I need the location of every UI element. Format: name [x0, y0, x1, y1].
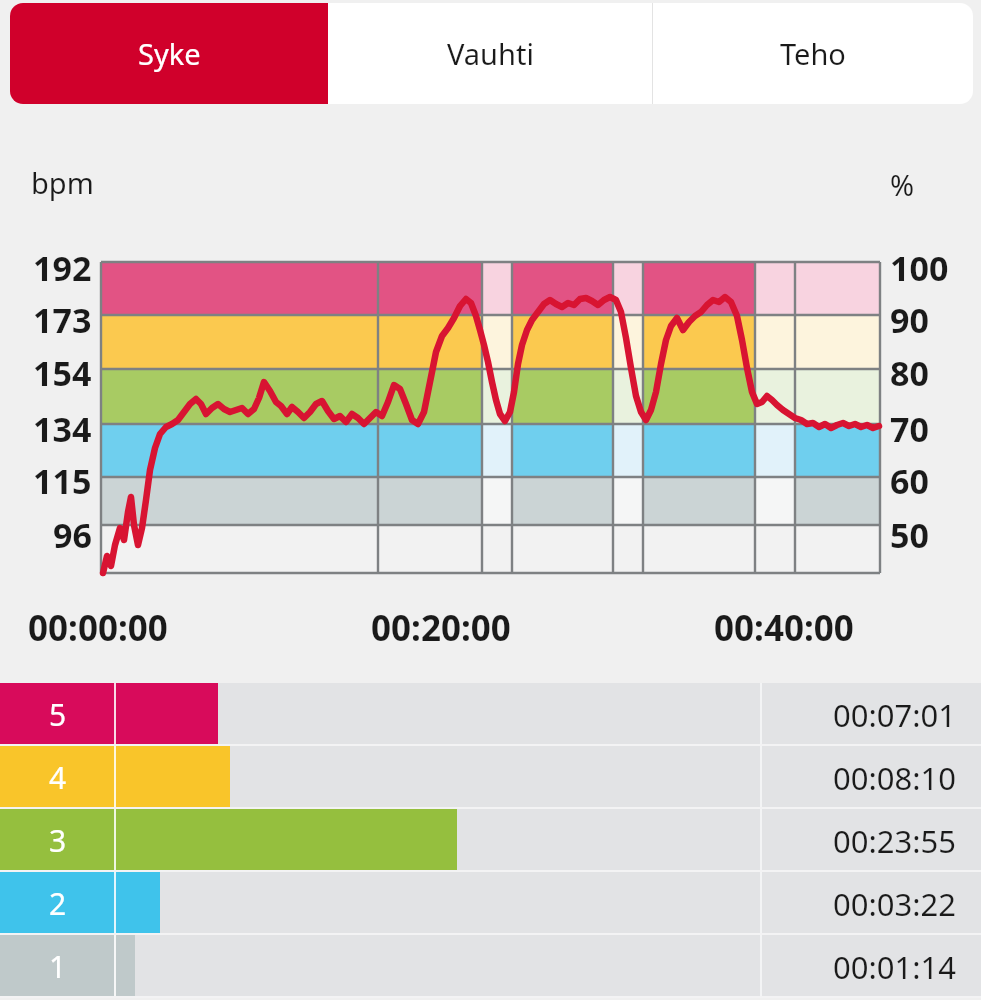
- staticText: 3: [49, 820, 67, 861]
- staticText: bpm: [31, 163, 94, 202]
- staticText: 192: [33, 245, 92, 291]
- staticText: 134: [33, 406, 92, 452]
- staticText: 5: [49, 694, 67, 735]
- button[interactable]: 3: [0, 809, 981, 872]
- staticText: 173: [33, 297, 92, 343]
- staticText: 2: [49, 883, 67, 924]
- staticText: 96: [53, 512, 92, 558]
- staticText: 4: [49, 757, 67, 798]
- staticText: Vauhti: [447, 34, 534, 73]
- staticText: 00:01:14: [833, 946, 957, 988]
- staticText: 00:08:10: [833, 757, 957, 799]
- button[interactable]: 1: [0, 935, 981, 998]
- staticText: 00:40:00: [714, 604, 854, 652]
- staticText: 00:00:00: [28, 604, 168, 652]
- staticText: Teho: [780, 34, 846, 73]
- button[interactable]: Syke: [10, 3, 328, 104]
- staticText: 50: [890, 512, 929, 558]
- staticText: 00:07:01: [833, 694, 957, 736]
- button[interactable]: 2: [0, 872, 981, 935]
- button[interactable]: Vauhti: [328, 3, 652, 104]
- staticText: 00:23:55: [833, 820, 957, 862]
- staticText: 90: [890, 297, 929, 343]
- staticText: 100: [890, 245, 949, 291]
- staticText: 00:20:00: [371, 604, 511, 652]
- button[interactable]: Teho: [653, 3, 973, 104]
- staticText: 60: [890, 458, 929, 504]
- button[interactable]: 4: [0, 746, 981, 809]
- staticText: %: [890, 165, 915, 204]
- staticText: 115: [33, 458, 92, 504]
- staticText: 80: [890, 350, 929, 396]
- staticText: 154: [33, 350, 92, 396]
- button[interactable]: 5: [0, 683, 981, 746]
- staticText: 1: [49, 946, 67, 987]
- staticText: 00:03:22: [833, 883, 957, 925]
- staticText: 70: [890, 406, 929, 452]
- staticText: Syke: [138, 34, 201, 73]
